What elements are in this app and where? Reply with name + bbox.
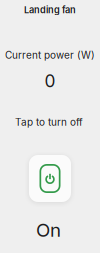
staticText: On (36, 219, 61, 241)
staticText: Tap to turn off (15, 116, 83, 128)
button[interactable]: Toggle power (29, 155, 71, 202)
staticText: Current power (W) (5, 49, 95, 61)
staticText: Landing fan (24, 4, 76, 15)
staticText: 0 (44, 70, 55, 91)
